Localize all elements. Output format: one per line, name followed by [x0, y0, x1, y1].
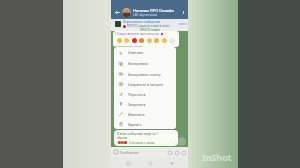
button[interactable]: Ответить — [114, 47, 176, 58]
button[interactable]: Recents — [123, 158, 133, 168]
button[interactable]: Наталья ПРО Онлайн — [133, 8, 179, 17]
staticText: В этом сообщении люди на 1 — [117, 132, 158, 136]
button[interactable]: More reactions — [169, 38, 175, 44]
button[interactable]: Reaction — [139, 38, 144, 43]
staticText: InShot — [202, 151, 232, 163]
button[interactable]: Пересланное сообщение — [115, 19, 187, 28]
button[interactable]: Emoji — [113, 149, 119, 155]
button[interactable]: More options — [179, 8, 187, 16]
button[interactable]: Сохранить в галерее — [114, 79, 176, 89]
button[interactable]: Reaction — [132, 38, 137, 43]
button[interactable]: Reaction — [154, 38, 159, 43]
staticText: Наталья ПРО Онлайн — [133, 8, 174, 13]
button[interactable]: Копировать ссылку — [114, 69, 176, 79]
button[interactable]: Reaction — [117, 38, 122, 43]
button[interactable]: Scroll to bottom — [177, 137, 186, 146]
button[interactable]: Home — [145, 158, 155, 168]
button[interactable]: Удалить — [114, 119, 176, 129]
staticText: Сохранить в галерее — [128, 82, 164, 87]
staticText: Закрепить — [128, 102, 146, 107]
button[interactable]: Сообщение — [120, 150, 166, 154]
staticText: 4 человека с одним — [129, 141, 155, 144]
button[interactable]: Копировать — [114, 58, 176, 69]
staticText: Отреагировать на мой — [115, 44, 143, 47]
button[interactable]: Переслать — [114, 89, 176, 99]
button[interactable]: Back — [166, 158, 176, 168]
button[interactable]: Изменить — [114, 109, 176, 119]
staticText: Пересланное сообщение — [123, 20, 161, 24]
button[interactable]: Reaction — [162, 38, 167, 43]
staticText: Сообщение — [120, 150, 139, 154]
staticText: Ответить — [128, 50, 144, 55]
staticText: ПРОСТО уходит — [140, 28, 160, 31]
staticText: ПРОСТО уходит из людей в газете — [127, 24, 170, 28]
staticText: Копировать — [128, 61, 149, 66]
button[interactable]: Back — [113, 8, 121, 16]
staticText: Изменить — [128, 112, 145, 117]
staticText: Переслать — [128, 92, 146, 97]
button[interactable]: Profile photo — [122, 8, 131, 17]
staticText: С Рождеством всех замечательных — [115, 32, 160, 36]
button[interactable]: Закрепить — [114, 99, 176, 109]
staticText: 1 — [173, 141, 175, 144]
button[interactable]: Voice — [180, 149, 187, 156]
button[interactable]: Notifications — [166, 149, 173, 156]
button[interactable]: Attach — [173, 149, 180, 156]
button[interactable]: Reaction — [124, 38, 129, 43]
staticText: обрали — [117, 136, 128, 140]
staticText: 240 подписчиков — [133, 13, 158, 17]
staticText: Удалить — [128, 122, 142, 127]
staticText: Копировать ссылку — [128, 72, 161, 77]
button[interactable]: Reaction — [147, 38, 152, 43]
